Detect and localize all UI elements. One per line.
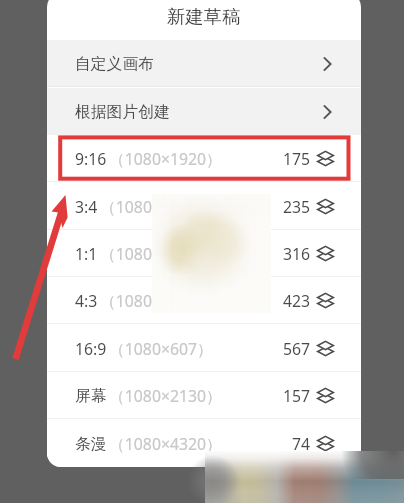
staticText: （1080×1920）	[109, 148, 222, 170]
button[interactable]: 9:16	[47, 135, 361, 182]
button[interactable]: 屏幕	[47, 372, 361, 419]
staticText: 屏幕	[75, 386, 107, 406]
staticText: 235	[283, 196, 311, 218]
button[interactable]: 自定义画布	[47, 40, 361, 87]
staticText: （1080×2130）	[109, 385, 222, 407]
button[interactable]: 根据图片创建	[47, 88, 361, 135]
staticText: （1080×4320）	[109, 433, 222, 455]
staticText: 175	[283, 148, 311, 170]
button[interactable]: 4:3	[47, 277, 361, 324]
staticText: 1:1	[75, 243, 98, 265]
staticText: 3:4	[75, 196, 98, 218]
staticText: 74	[292, 433, 311, 455]
staticText: 4:3	[75, 290, 98, 312]
button[interactable]: 条漫	[47, 420, 361, 467]
button[interactable]: 16:9	[47, 325, 361, 372]
staticText: 9:16	[75, 148, 107, 170]
staticText: 16:9	[75, 338, 107, 360]
staticText: 条漫	[75, 434, 107, 454]
staticText: （1080×607）	[109, 338, 213, 360]
staticText: （1080×1080）	[100, 243, 213, 265]
button[interactable]: 1:1	[47, 230, 361, 277]
staticText: 423	[283, 290, 311, 312]
staticText: （1080×1440）	[100, 196, 213, 218]
staticText: 157	[283, 385, 311, 407]
staticText: 根据图片创建	[75, 102, 170, 122]
staticText: 567	[283, 338, 311, 360]
staticText: 316	[283, 243, 311, 265]
staticText: （1080×810）	[100, 290, 204, 312]
staticText: 新建草稿	[167, 5, 241, 28]
staticText: 自定义画布	[75, 54, 154, 74]
button[interactable]: 3:4	[47, 183, 361, 230]
